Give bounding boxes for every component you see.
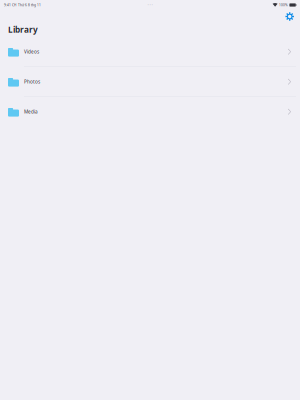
staticText: Photos: [24, 78, 40, 85]
button[interactable]: Media: [0, 97, 300, 127]
staticText: 9:41 CH Thứ 6 8 thg 11: [4, 3, 41, 7]
button[interactable]: Photos: [0, 67, 300, 97]
button[interactable]: Settings: [283, 9, 296, 23]
staticText: Videos: [24, 48, 39, 55]
staticText: Media: [24, 108, 38, 115]
button[interactable]: Videos: [0, 37, 300, 67]
staticText: Library: [8, 24, 38, 35]
staticText: 100%: [279, 3, 288, 7]
staticText: • • •: [147, 3, 152, 7]
